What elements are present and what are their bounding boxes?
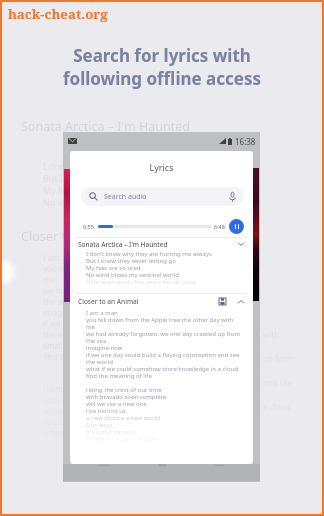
staticText: I don't know why they are hurting me alw…: [43, 160, 232, 172]
button[interactable]: Back: [97, 463, 111, 467]
staticText: 6:48: [214, 223, 225, 230]
staticText: riding the crest of our time: [43, 383, 144, 394]
button[interactable]: Sonata Arctica – I'm Haunted: [70, 238, 253, 250]
button[interactable]: Save: [219, 298, 226, 305]
button[interactable]: Home: [155, 463, 169, 467]
staticText: But I know they never letting go: [86, 257, 176, 264]
staticText: Search audio: [104, 192, 147, 202]
staticText: if we one day could build a flaying cont…: [86, 351, 240, 358]
staticText: the sea: [86, 337, 107, 344]
staticText: My feet are so tired: [43, 184, 125, 196]
staticText: No wind blows my sentinel world: [43, 196, 183, 208]
staticText: I am a man: [43, 252, 86, 263]
button[interactable]: Collapse: [237, 298, 245, 306]
staticText: a new chance a new world: [43, 427, 142, 438]
staticText: with: [263, 329, 280, 340]
staticText: No wind blows my sentinel world: [86, 271, 180, 278]
staticText: if we one day could build a flaying: [43, 318, 171, 329]
staticText: Sonata Arctica – I'm Haunted: [21, 118, 190, 135]
staticText: me: [86, 323, 95, 330]
staticText: will we see a new one: [86, 400, 147, 407]
staticText: But I know they never letting go: [43, 172, 178, 184]
staticText: 0:55: [83, 223, 94, 230]
staticText: what if we could somehow store kn: [43, 340, 176, 351]
staticText: find the meaning of life: [86, 372, 152, 379]
staticText: will we see a new one: [43, 405, 124, 416]
button[interactable]: Expand: [237, 240, 245, 248]
staticText: with bravado soon complete: [86, 393, 167, 400]
staticText: Sonata Arctica – I'm Haunted: [78, 240, 168, 249]
staticText: hack-cheat.org: [8, 5, 108, 23]
staticText: rise behind us.: [43, 416, 99, 427]
staticText: Nine ways wash, five years lies on away: [86, 278, 197, 285]
staticText: with bravado soon complete: [43, 394, 150, 405]
staticText: Closer to an Animal: [78, 297, 139, 306]
staticText: and see: [263, 377, 293, 388]
staticText: My feet are so tired: [86, 264, 141, 271]
staticText: we had already forgotten, we one: [43, 285, 170, 296]
staticText: I am a man: [86, 309, 118, 316]
staticText: Closer to an Animal: [21, 228, 136, 245]
staticText: Search for lyrics with following offline…: [0, 44, 324, 90]
button[interactable]: Search audio: [81, 187, 244, 206]
staticText: rise behind us.: [86, 407, 128, 414]
staticText: Lyrics: [70, 161, 253, 173]
staticText: the world: [86, 358, 113, 365]
staticText: me: [43, 274, 55, 285]
staticText: the sea: [43, 296, 71, 307]
staticText: imagine now: [43, 307, 92, 318]
button[interactable]: Closer to an Animal: [70, 294, 253, 309]
staticText: what if we could somehow store knowledge…: [86, 365, 238, 372]
staticText: I don't know why they are hurting me alw…: [86, 250, 212, 257]
staticText: you fell down from the Apple tree: [43, 263, 169, 274]
staticText: riding the crest of our time: [86, 386, 162, 393]
staticText: you fell down from the Apple tree the ot…: [86, 316, 234, 323]
staticText: a new chance a new world: [86, 414, 160, 421]
staticText: we had already forgotten, we one day cra…: [86, 330, 241, 337]
staticText: imagine now: [86, 344, 123, 351]
staticText: It's a bad mistake: [86, 428, 136, 435]
button[interactable]: Pause: [229, 219, 244, 234]
staticText: the world: [43, 329, 79, 340]
staticText: find the meaning of life: [43, 351, 131, 362]
staticText: 16:38: [235, 136, 256, 147]
staticText: a cloud: [263, 401, 291, 412]
button[interactable]: Recents: [212, 463, 226, 467]
staticText: Our ways: [86, 421, 113, 428]
staticText: up from: [263, 353, 294, 364]
